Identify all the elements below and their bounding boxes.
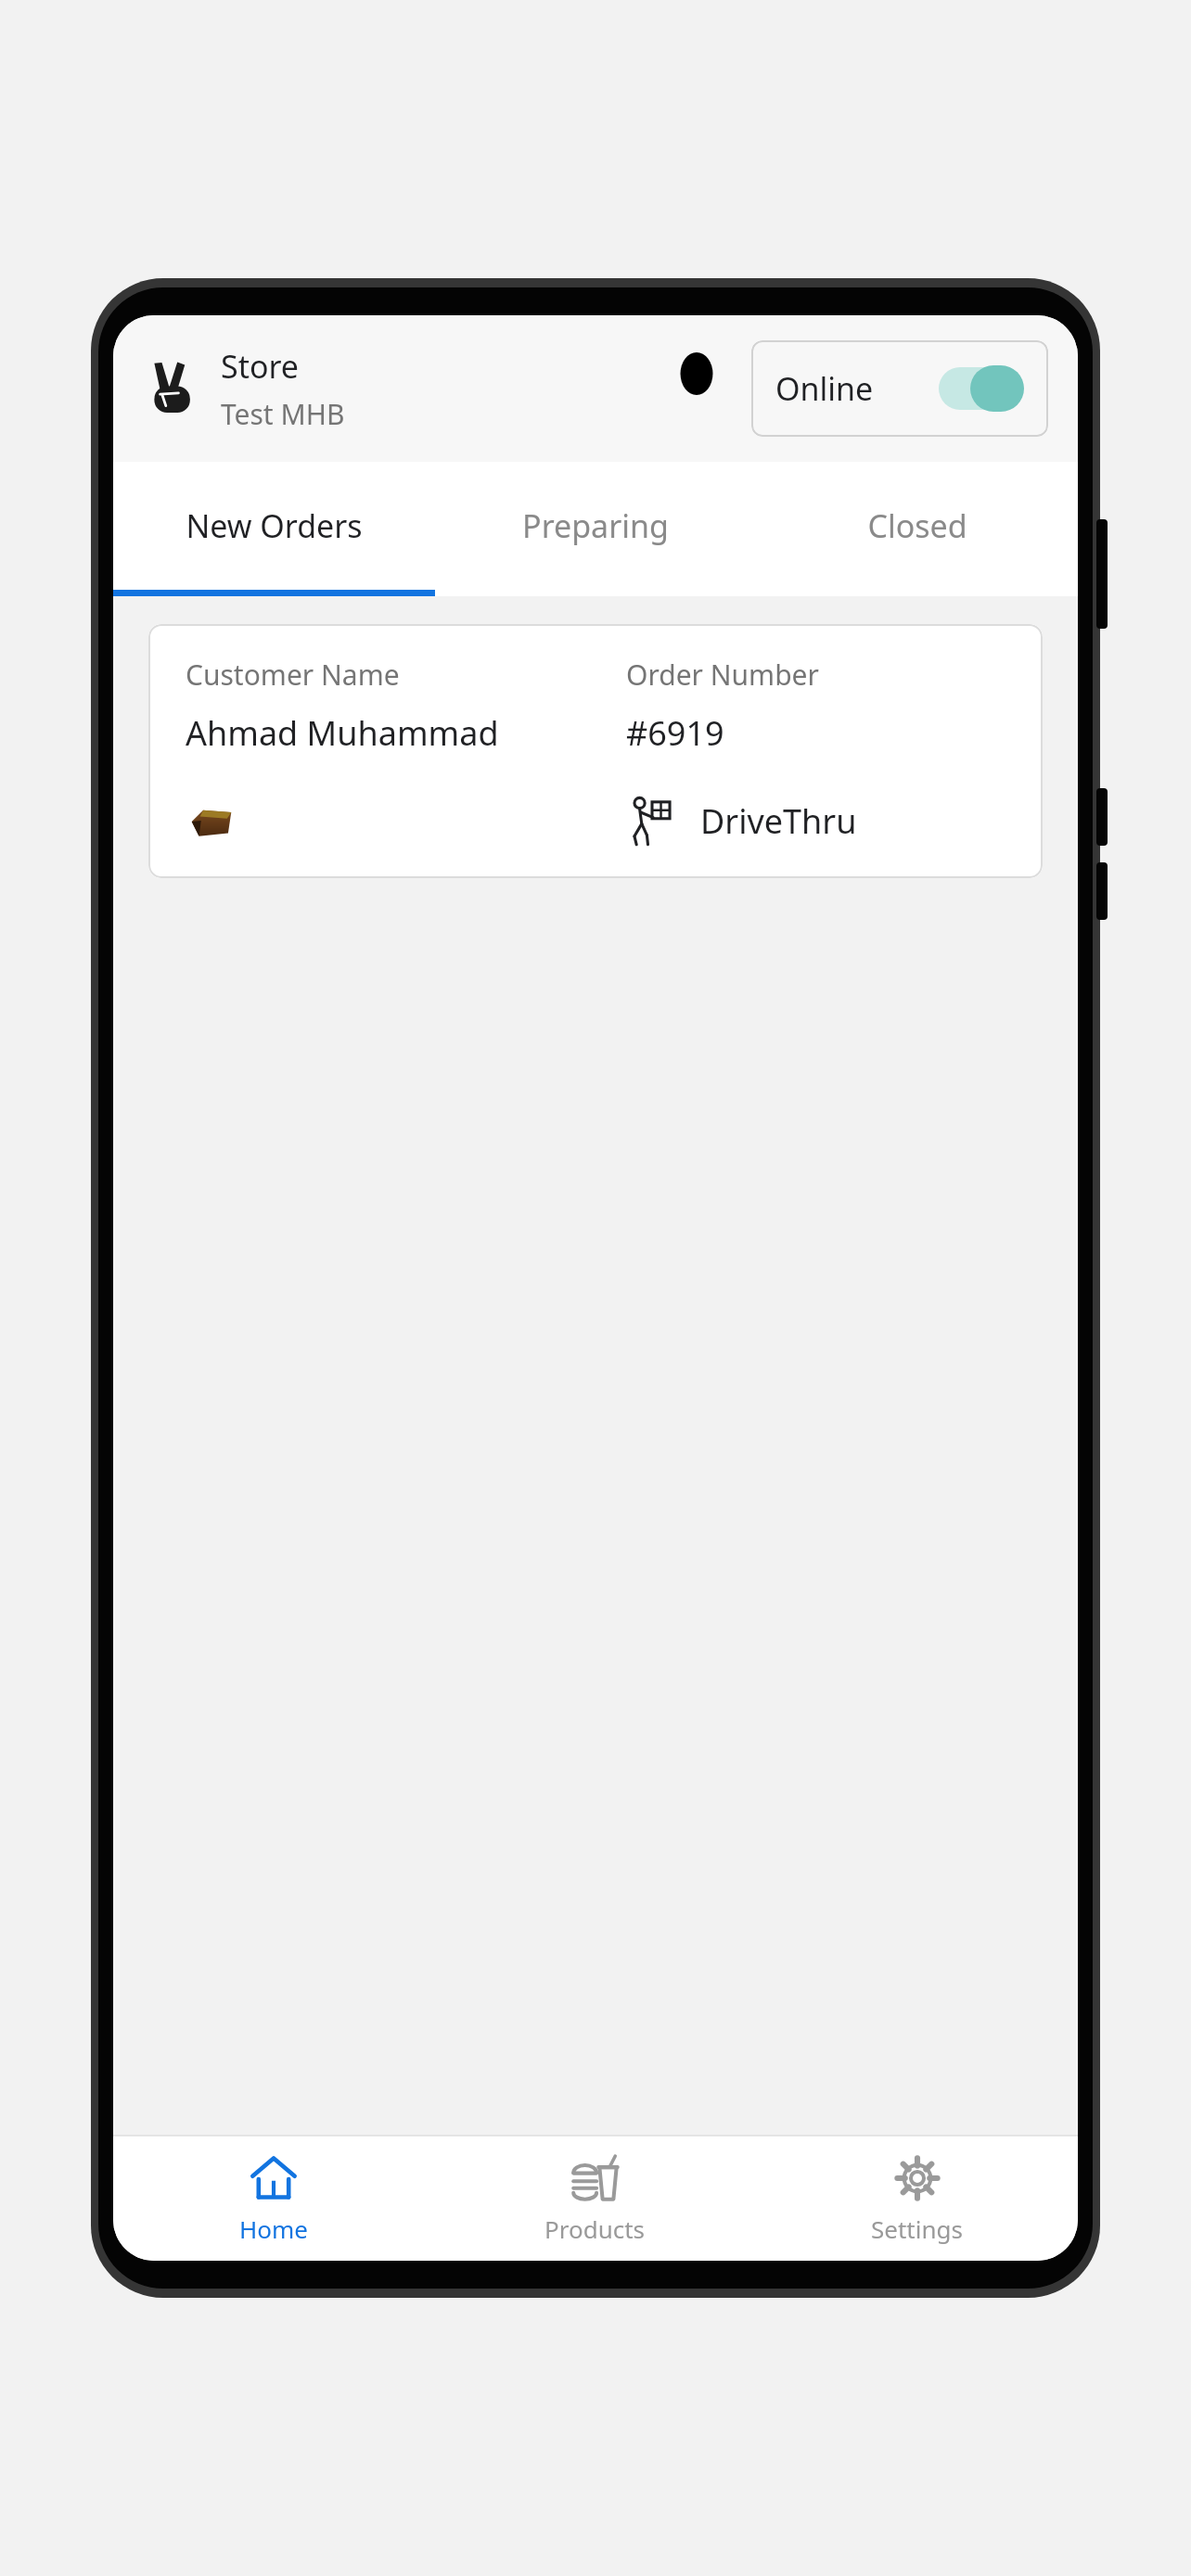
button[interactable]: Closed — [756, 462, 1078, 590]
staticText: Products — [544, 2213, 646, 2245]
staticText: DriveThru — [700, 798, 857, 844]
staticText: New Orders — [186, 504, 363, 547]
staticText: Preparing — [522, 504, 669, 547]
button[interactable]: New Orders — [113, 462, 434, 590]
button[interactable]: Online — [751, 340, 1048, 437]
staticText: Store — [221, 345, 300, 388]
staticText: Test MHB — [221, 395, 345, 433]
button[interactable]: Home — [113, 2136, 434, 2261]
button[interactable]: Customer Name — [148, 624, 1043, 878]
staticText: Settings — [871, 2213, 963, 2245]
button[interactable]: Settings — [756, 2136, 1078, 2261]
button[interactable]: Preparing — [434, 462, 756, 590]
staticText: Order Number — [626, 656, 819, 694]
staticText: Closed — [867, 504, 967, 547]
staticText: Home — [239, 2213, 308, 2245]
staticText: Online — [775, 367, 874, 410]
staticText: #6919 — [626, 710, 724, 756]
staticText: Customer Name — [186, 656, 400, 694]
button[interactable]: Products — [434, 2136, 756, 2261]
staticText: Ahmad Muhammad — [186, 710, 499, 756]
